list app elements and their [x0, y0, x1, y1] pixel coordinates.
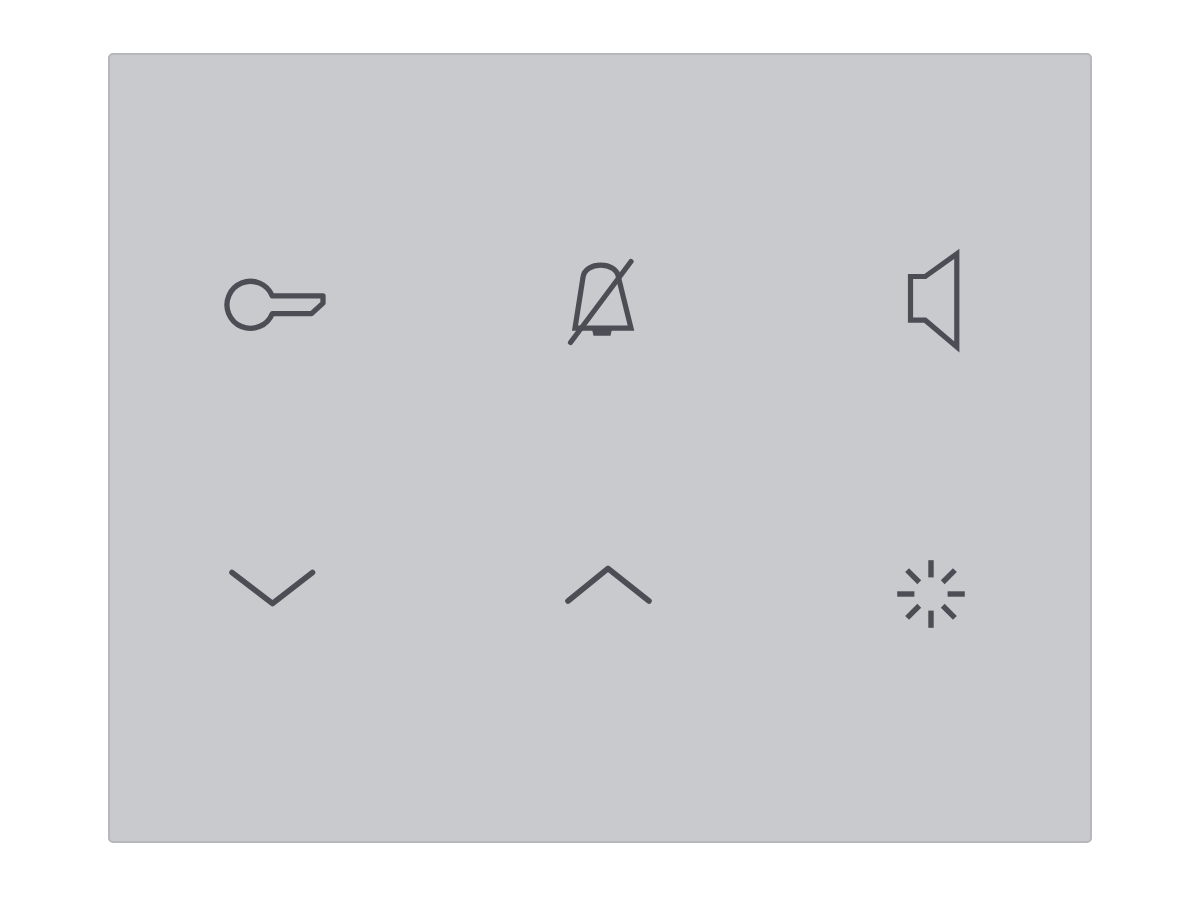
button[interactable]: Blinds down	[154, 474, 394, 714]
button[interactable]: Do not disturb	[482, 184, 722, 424]
button[interactable]: Brightness	[811, 474, 1051, 714]
button[interactable]: Speaker	[811, 184, 1051, 424]
button[interactable]: Key scene	[154, 184, 394, 424]
button[interactable]: Blinds up	[482, 474, 722, 714]
